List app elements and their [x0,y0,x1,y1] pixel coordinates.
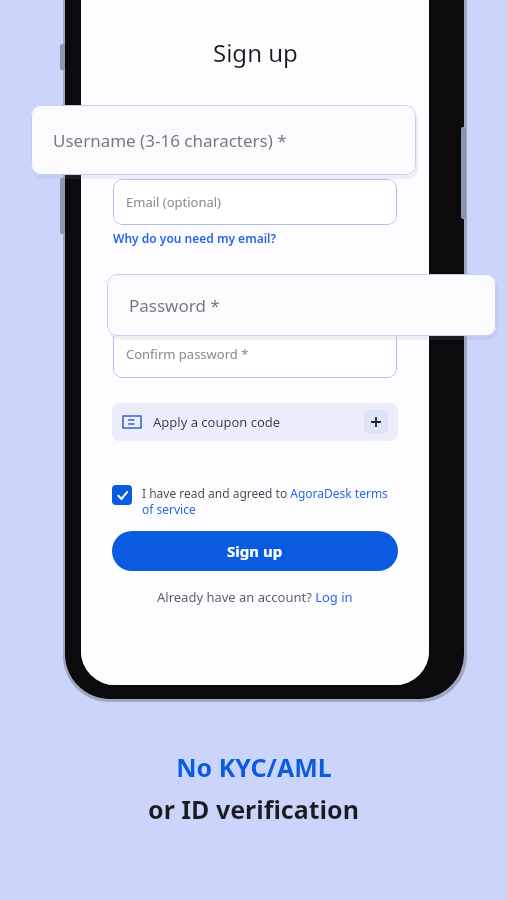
staticText: I have read and agreed to AgoraDesk term… [142,485,398,517]
staticText: or ID verification [148,792,359,826]
staticText: Sign up [213,36,298,69]
button[interactable]: Why do you need my email? [113,230,277,246]
staticText: Sign up [227,541,283,561]
button[interactable]: I have read and agreed to AgoraDesk term… [112,485,398,517]
staticText: Email (optional) [126,193,222,211]
button[interactable]: Username (3-16 characters) * [31,105,416,175]
button[interactable]: Apply a coupon code [112,403,398,441]
staticText: Confirm password * [126,345,249,363]
staticText: No KYC/AML [176,750,332,784]
button[interactable]: Already have an account? Log in [157,588,353,606]
staticText: Username (3-16 characters) * [53,129,287,152]
button[interactable]: Confirm password * [113,330,397,378]
button[interactable]: Password * [107,274,496,336]
button[interactable]: Email (optional) [113,179,397,225]
button[interactable]: Sign up [112,531,398,571]
staticText: Apply a coupon code [153,413,281,431]
staticText: Password * [129,294,220,317]
button[interactable]: Add coupon code [364,410,388,434]
